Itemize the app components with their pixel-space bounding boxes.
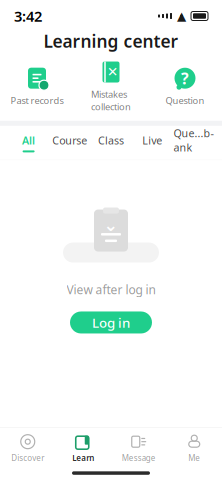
button[interactable]: Que...bank [173, 126, 214, 160]
button[interactable]: Log in [70, 311, 152, 333]
staticText: All [22, 133, 35, 147]
button[interactable]: Course [49, 126, 90, 160]
button[interactable]: All [8, 126, 49, 160]
button[interactable]: Live [132, 126, 173, 160]
button[interactable]: Past records [0, 66, 74, 107]
button[interactable]: Class [90, 126, 132, 160]
button[interactable]: Learn [55, 434, 111, 463]
button[interactable]: Message [111, 434, 166, 463]
staticText: 3:42 [14, 6, 42, 26]
staticText: Me [188, 453, 200, 463]
button[interactable]: Discover [0, 434, 55, 463]
staticText: Question [165, 94, 204, 107]
staticText: Learn [72, 453, 94, 463]
button[interactable]: ✕ [74, 60, 148, 113]
staticText: Que...bank [173, 126, 213, 154]
staticText: Past records [10, 94, 63, 107]
staticText: View after log in [66, 281, 155, 297]
staticText: ? [181, 68, 189, 89]
staticText: Log in [92, 314, 130, 331]
staticText: Class [98, 133, 124, 147]
staticText: ✕ [107, 64, 118, 79]
staticText: Message [122, 453, 156, 463]
staticText: Mistakes collection [91, 88, 131, 113]
staticText: Course [52, 133, 87, 147]
staticText: Discover [11, 453, 44, 463]
staticText: Live [142, 133, 162, 147]
button[interactable]: ? [148, 66, 222, 107]
staticText: Learning center [43, 29, 178, 52]
staticText: ⌄ [103, 215, 118, 235]
staticText: ▲ [177, 9, 186, 23]
button[interactable]: Me [166, 434, 222, 463]
